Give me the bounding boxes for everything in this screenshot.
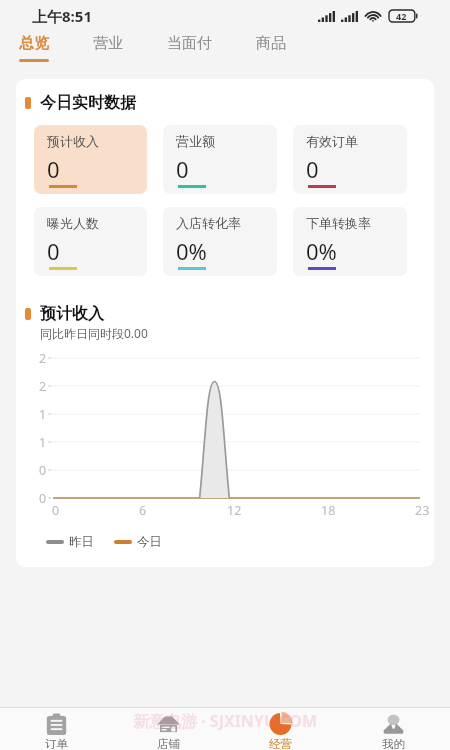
staticText: 1 bbox=[39, 406, 47, 423]
staticText: 新意电游 · SJXINYU.COM bbox=[133, 710, 318, 732]
button[interactable]: Business bbox=[224, 708, 337, 750]
staticText: 18 bbox=[321, 502, 336, 519]
staticText: 上午8:51 bbox=[32, 6, 92, 26]
staticText: 0 bbox=[39, 490, 47, 507]
staticText: 0% bbox=[306, 236, 337, 266]
staticText: 预计收入 bbox=[40, 304, 104, 324]
button[interactable]: 商品 bbox=[234, 31, 308, 59]
staticText: 42 bbox=[396, 10, 407, 22]
staticText: 预计收入 bbox=[47, 133, 99, 149]
button[interactable]: 营业额 bbox=[163, 125, 277, 194]
staticText: 店铺 bbox=[157, 737, 180, 750]
button[interactable]: 下单转换率 bbox=[293, 207, 407, 276]
button[interactable]: 曝光人数 bbox=[34, 207, 147, 276]
staticText: 6 bbox=[139, 502, 147, 519]
staticText: 0% bbox=[176, 236, 207, 266]
staticText: 总览 bbox=[19, 34, 49, 53]
staticText: 23 bbox=[415, 502, 430, 519]
button[interactable]: 营业 bbox=[71, 31, 145, 59]
staticText: 0 bbox=[52, 502, 60, 519]
staticText: 2 bbox=[39, 350, 47, 367]
staticText: 今日 bbox=[137, 534, 162, 550]
staticText: 2 bbox=[39, 378, 47, 395]
staticText: 同比昨日同时段0.00 bbox=[40, 325, 148, 341]
staticText: 曝光人数 bbox=[47, 215, 99, 231]
staticText: 0 bbox=[39, 462, 47, 479]
staticText: 12 bbox=[227, 502, 242, 519]
staticText: 营业额 bbox=[176, 133, 215, 149]
staticText: 我的 bbox=[382, 737, 405, 750]
staticText: 商品 bbox=[256, 34, 286, 53]
staticText: 1 bbox=[39, 434, 47, 451]
staticText: 昨日 bbox=[69, 534, 94, 550]
button[interactable]: 有效订单 bbox=[293, 125, 407, 194]
button[interactable]: 入店转化率 bbox=[163, 207, 277, 276]
staticText: 今日实时数据 bbox=[40, 93, 136, 113]
button[interactable]: 总览 bbox=[0, 31, 71, 62]
button[interactable]: Profile bbox=[337, 708, 450, 750]
staticText: 下单转换率 bbox=[306, 215, 371, 231]
staticText: 订单 bbox=[45, 737, 68, 750]
staticText: 0 bbox=[47, 236, 60, 266]
button[interactable]: 预计收入 bbox=[34, 125, 147, 194]
staticText: 当面付 bbox=[167, 34, 212, 53]
button[interactable]: Shop bbox=[112, 708, 224, 750]
staticText: 入店转化率 bbox=[176, 215, 241, 231]
staticText: 营业 bbox=[93, 34, 123, 53]
staticText: 0 bbox=[47, 154, 60, 184]
button[interactable]: 当面付 bbox=[145, 31, 234, 59]
staticText: 有效订单 bbox=[306, 133, 358, 149]
staticText: 0 bbox=[176, 154, 189, 184]
staticText: 0 bbox=[306, 154, 319, 184]
button[interactable]: Orders bbox=[0, 708, 112, 750]
staticText: 经营 bbox=[269, 737, 292, 750]
